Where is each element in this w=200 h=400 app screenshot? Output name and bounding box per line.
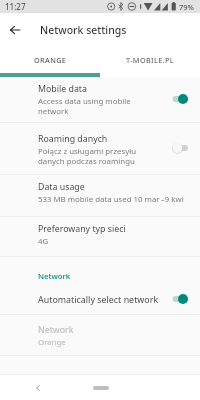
button[interactable]: Back: [6, 21, 24, 39]
staticText: Data usage: [38, 181, 85, 193]
staticText: Orange: [38, 337, 66, 348]
staticText: T-MOBILE.PL: [126, 55, 175, 65]
button[interactable]: Network: [0, 315, 200, 355]
staticText: 4G: [38, 236, 49, 247]
staticText: Mobile data: [38, 83, 87, 95]
button[interactable]: Switch on: [168, 292, 190, 306]
button[interactable]: ORANGE: [0, 46, 100, 73]
staticText: Network: [38, 324, 74, 336]
staticText: 11:27: [5, 1, 26, 12]
button[interactable]: T-MOBILE.PL: [100, 46, 200, 73]
staticText: Automatically select network: [38, 293, 168, 305]
button[interactable]: Automatically select network: [0, 282, 200, 314]
staticText: Preferowany typ sieci: [38, 223, 126, 235]
button[interactable]: Mobile data: [0, 77, 200, 122]
button[interactable]: Switch off: [168, 141, 190, 155]
staticText: Network settings: [40, 23, 127, 37]
button[interactable]: Switch on: [168, 92, 190, 106]
staticText: Access data using mobile network: [38, 96, 131, 116]
button[interactable]: Data usage: [0, 175, 200, 216]
button[interactable]: Home: [93, 386, 109, 390]
button[interactable]: Preferowany typ sieci: [0, 217, 200, 256]
button[interactable]: Roaming danych: [0, 123, 200, 174]
staticText: Network: [38, 271, 71, 282]
button[interactable]: Back: [35, 385, 41, 391]
staticText: Połącz z usługami przesyłu danych podcza…: [38, 146, 137, 166]
staticText: 533 MB mobile data used 10 mar –9 kwi: [38, 194, 184, 205]
staticText: ORANGE: [34, 55, 67, 65]
staticText: Roaming danych: [38, 133, 108, 145]
staticText: 79%: [179, 2, 194, 12]
